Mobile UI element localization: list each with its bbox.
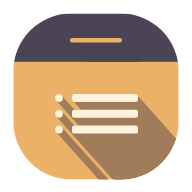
button[interactable]: Task list app icon — [0, 0, 192, 192]
